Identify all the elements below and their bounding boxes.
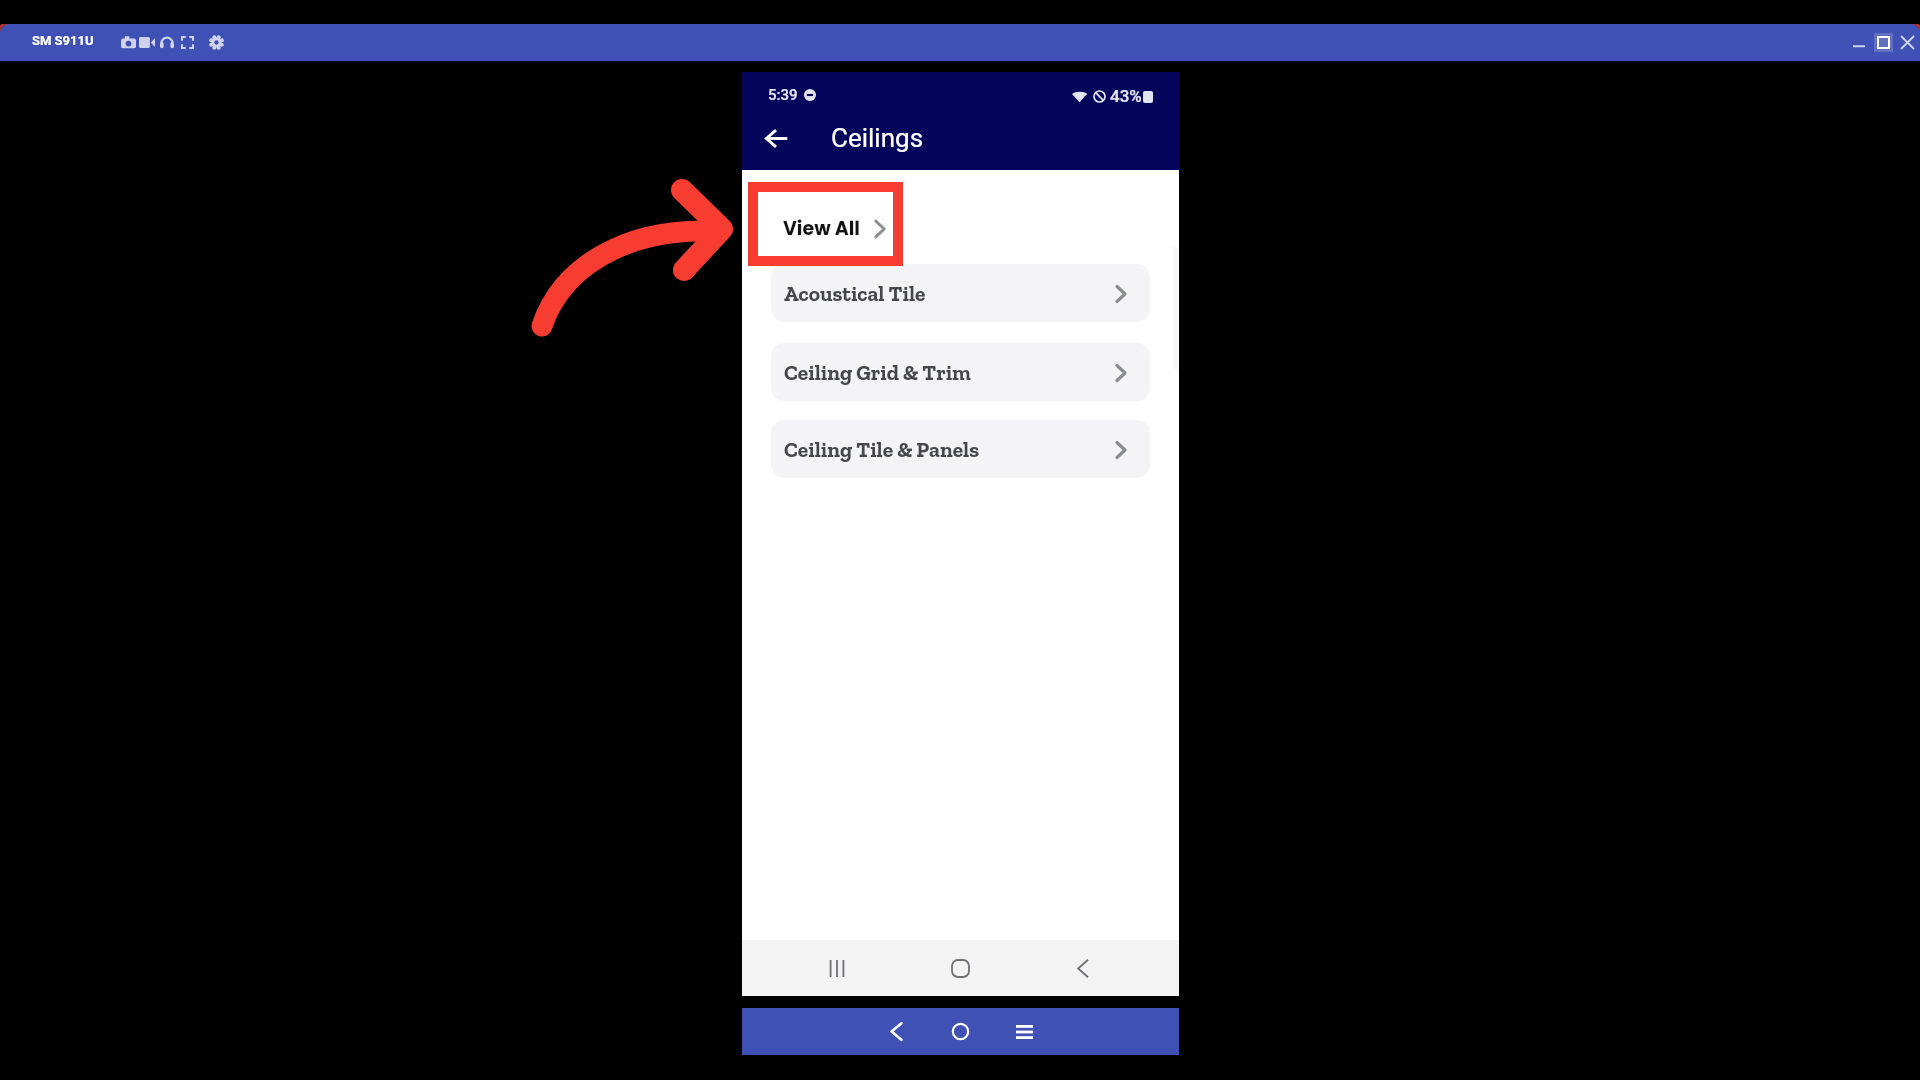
button[interactable]: Screenshot [118,24,138,61]
button[interactable]: Navigate up [752,114,800,162]
button[interactable]: View All [783,215,892,242]
button[interactable]: Recent apps [812,940,862,996]
button[interactable]: App switch [1000,1008,1048,1055]
button[interactable]: Home [935,940,985,996]
button[interactable]: Back [872,1008,920,1055]
staticText: Ceilings [831,123,924,153]
staticText: Ceiling Tile & Panels [784,437,980,463]
button[interactable]: Maximize [1871,24,1895,61]
button[interactable]: Record screen [137,24,157,61]
staticText: Acoustical Tile [784,281,926,307]
staticText: 43% [1110,86,1142,106]
button[interactable]: Minimize [1847,24,1871,61]
button[interactable]: Ceiling Tile & Panels [771,420,1150,478]
staticText: SM S911U [32,33,94,48]
staticText: 5:39 [768,86,798,104]
staticText: View All [783,215,860,242]
button[interactable]: Audio [157,24,177,61]
button[interactable]: Settings [206,24,226,61]
staticText: Ceiling Grid & Trim [784,360,971,386]
button[interactable]: Acoustical Tile [771,264,1150,322]
button[interactable]: Back [1058,940,1108,996]
button[interactable]: Ceiling Grid & Trim [771,343,1150,401]
button[interactable]: Close [1895,24,1919,61]
button[interactable]: Fullscreen [177,24,197,61]
button[interactable]: Home [936,1008,984,1055]
